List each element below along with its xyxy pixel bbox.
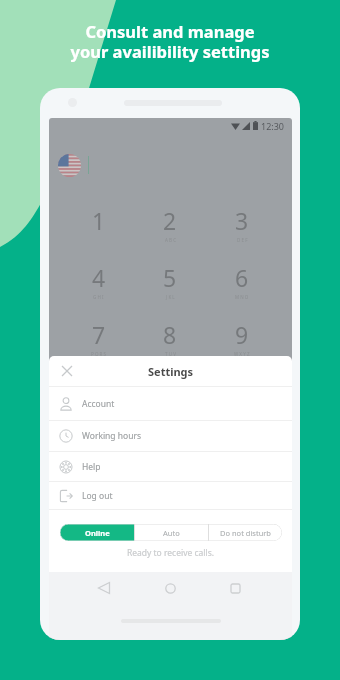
staticText: J K L — [166, 294, 175, 300]
button[interactable]: 6 — [206, 262, 278, 300]
button[interactable]: 2 — [134, 205, 206, 243]
staticText: 8 — [163, 319, 177, 350]
staticText: 7 — [92, 319, 106, 350]
staticText: W X Y Z — [234, 351, 250, 357]
staticText: Log out — [82, 490, 113, 502]
button[interactable]: 4 — [63, 262, 134, 300]
staticText: 6 — [235, 262, 249, 293]
staticText: G H I — [93, 294, 104, 300]
button[interactable]: Help — [49, 452, 292, 481]
staticText: Help — [82, 461, 101, 473]
staticText: 5 — [163, 262, 177, 293]
button[interactable]: Do not disturb — [209, 524, 282, 541]
button[interactable]: Working hours — [49, 421, 292, 451]
staticText: T U V — [165, 351, 176, 357]
staticText: 2 — [163, 205, 177, 236]
button[interactable]: Recents — [225, 578, 245, 598]
staticText: P Q R S — [91, 351, 107, 357]
staticText: Auto — [163, 528, 180, 538]
button[interactable]: Account — [49, 387, 292, 420]
button[interactable]: 3 — [206, 205, 278, 243]
staticText: 1 — [92, 205, 106, 236]
staticText: 9 — [235, 319, 249, 350]
staticText: D E F — [237, 237, 248, 243]
staticText: Consult and manage your availibility set… — [70, 20, 270, 63]
button[interactable]: Back — [94, 578, 114, 598]
staticText: Do not disturb — [220, 528, 271, 538]
staticText: M N O — [235, 294, 249, 300]
staticText: Ready to receive calls. — [49, 547, 292, 559]
button[interactable]: Close — [56, 360, 78, 382]
button[interactable]: Log out — [49, 482, 292, 509]
staticText: Online — [85, 528, 110, 538]
button[interactable]: 1 — [63, 205, 134, 237]
staticText: 4 — [92, 262, 106, 293]
staticText: Settings — [148, 364, 194, 379]
button[interactable]: 9 — [206, 319, 278, 357]
button[interactable]: Home — [160, 578, 180, 598]
staticText: Working hours — [82, 430, 142, 442]
button[interactable]: Auto — [135, 524, 208, 541]
button[interactable]: 8 — [134, 319, 206, 357]
staticText: 3 — [235, 205, 249, 236]
button[interactable]: 5 — [134, 262, 206, 300]
button[interactable]: 7 — [63, 319, 134, 357]
staticText: A B C — [165, 237, 176, 243]
staticText: Account — [82, 398, 115, 410]
button[interactable]: Online — [60, 524, 134, 541]
staticText: 12:30 — [261, 120, 285, 132]
